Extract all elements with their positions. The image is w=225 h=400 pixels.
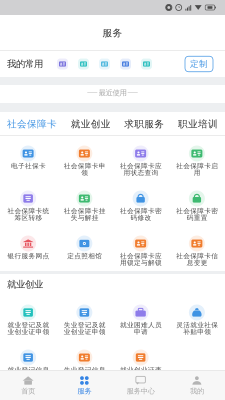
button[interactable]: 职业培训 bbox=[178, 118, 218, 130]
staticText: 就业创业 bbox=[71, 118, 111, 130]
staticText: 失业登记及就业创业证申领 bbox=[63, 321, 105, 336]
staticText: 社会保障卡应用状态查询 bbox=[120, 162, 162, 177]
staticText: 社会保障卡启用 bbox=[176, 162, 218, 177]
button[interactable]: 求职服务 bbox=[124, 118, 164, 130]
staticText: 电子社保卡 bbox=[11, 162, 46, 170]
button[interactable]: 就业困难人员申请 bbox=[112, 295, 169, 340]
button[interactable]: 就业创业 bbox=[71, 118, 111, 130]
button[interactable]: 社会保障卡启用 bbox=[169, 136, 225, 181]
staticText: 社会保障卡信息变更 bbox=[176, 252, 218, 267]
button[interactable]: 社会保障卡应用锁定与解锁 bbox=[112, 226, 169, 271]
staticText: 服务中心 bbox=[127, 386, 155, 396]
staticText: 我的 bbox=[190, 386, 204, 396]
staticText: 就业登记信息变更申请 bbox=[7, 366, 49, 381]
button[interactable]: Shortcut bbox=[56, 57, 69, 70]
button[interactable]: 失业登记及就业创业证申领 bbox=[56, 295, 112, 340]
staticText: 社会保障卡挂失与解挂 bbox=[63, 207, 105, 222]
button[interactable]: 定制 bbox=[185, 56, 213, 72]
staticText: 失业登记信息变更申请 bbox=[63, 366, 105, 381]
button[interactable]: 社会保障卡密码重置 bbox=[169, 181, 225, 226]
staticText: 就业创业 bbox=[7, 279, 43, 290]
staticText: 求职服务 bbox=[124, 118, 164, 130]
staticText: 职业培训 bbox=[178, 118, 218, 130]
staticText: 社会保障卡申领 bbox=[63, 162, 105, 177]
staticText: 就业登记及就业创业证申领 bbox=[7, 321, 49, 336]
staticText: 社会保障卡应用锁定与解锁 bbox=[120, 252, 162, 267]
button[interactable]: 失业登记信息变更申请 bbox=[56, 340, 112, 385]
staticText: 社会保障卡密码修改 bbox=[120, 207, 162, 222]
button[interactable]: Shortcut bbox=[119, 57, 132, 70]
button[interactable]: Shortcut bbox=[140, 57, 153, 70]
staticText: 我的常用 bbox=[7, 58, 43, 70]
staticText: 灵活就业社保补贴申领 bbox=[176, 321, 218, 336]
button[interactable]: 社会保障卡申领 bbox=[56, 136, 112, 181]
button[interactable]: 就业创业证查询 bbox=[112, 340, 169, 385]
staticText: 社会保障卡 bbox=[7, 118, 57, 130]
staticText: 就业创业证查询 bbox=[120, 366, 162, 381]
staticText: 社会保障卡统筹区转移 bbox=[7, 207, 49, 222]
staticText: 服务 bbox=[102, 27, 122, 39]
button[interactable]: 我的 bbox=[169, 370, 225, 400]
button[interactable]: 就业登记信息变更申请 bbox=[0, 340, 56, 385]
button[interactable]: 社会保障卡统筹区转移 bbox=[0, 181, 56, 226]
staticText: 银行服务网点 bbox=[7, 252, 49, 260]
button[interactable]: 定点照相馆 bbox=[56, 226, 112, 271]
staticText: 就业困难人员申请 bbox=[120, 321, 162, 336]
button[interactable]: 社会保障卡 bbox=[7, 118, 57, 130]
button[interactable]: Shortcut bbox=[98, 57, 111, 70]
button[interactable]: 电子社保卡 bbox=[0, 136, 56, 181]
button[interactable]: 银行服务网点 bbox=[0, 226, 56, 271]
button[interactable]: 就业登记及就业创业证申领 bbox=[0, 295, 56, 340]
button[interactable]: 首页 bbox=[0, 370, 56, 400]
button[interactable]: 社会保障卡挂失与解挂 bbox=[56, 181, 112, 226]
button[interactable]: Shortcut bbox=[77, 57, 90, 70]
button[interactable]: 灵活就业社保补贴申领 bbox=[169, 295, 225, 340]
staticText: 首页 bbox=[21, 386, 35, 396]
button[interactable]: 社会保障卡密码修改 bbox=[112, 181, 169, 226]
button[interactable]: 社会保障卡信息变更 bbox=[169, 226, 225, 271]
staticText: 社会保障卡密码重置 bbox=[176, 207, 218, 222]
staticText: 最近使用 bbox=[98, 88, 126, 97]
button[interactable]: 服务中心 bbox=[112, 370, 169, 400]
button[interactable]: 社会保障卡应用状态查询 bbox=[112, 136, 169, 181]
staticText: 定制 bbox=[190, 59, 208, 69]
staticText: 服务 bbox=[77, 386, 91, 396]
staticText: 定点照相馆 bbox=[67, 252, 102, 260]
button[interactable]: 服务 bbox=[56, 370, 112, 400]
